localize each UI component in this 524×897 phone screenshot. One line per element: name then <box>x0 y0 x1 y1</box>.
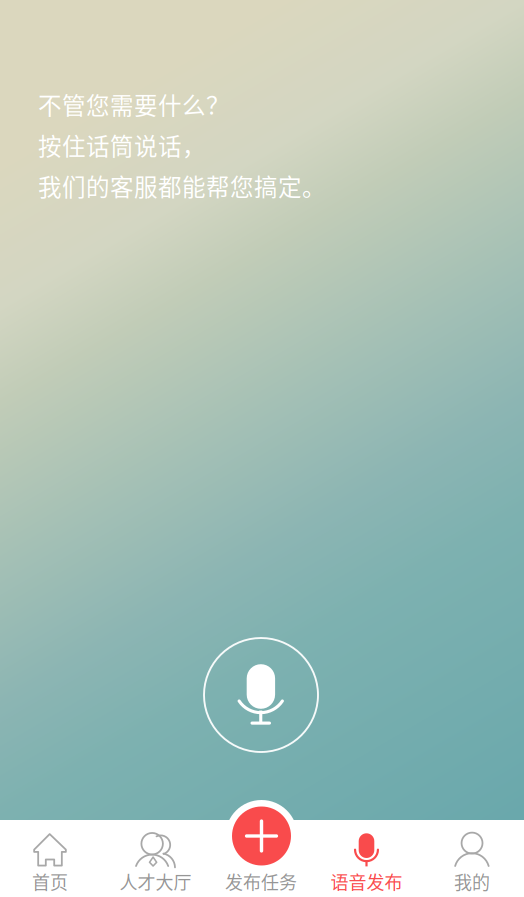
button[interactable]: 按住话筒说话 <box>204 638 318 752</box>
button[interactable]: 我的 <box>419 820 524 897</box>
button[interactable]: 人才大厅 <box>103 820 208 897</box>
button[interactable]: 首页 <box>0 820 103 897</box>
button[interactable]: 发布任务 <box>208 820 314 897</box>
staticText: 人才大厅 <box>119 868 191 895</box>
staticText: 首页 <box>32 868 68 895</box>
staticText: 我的 <box>454 868 490 895</box>
staticText: 按住话筒说话， <box>38 128 206 162</box>
staticText: 发布任务 <box>225 868 297 895</box>
staticText: 语音发布 <box>330 868 402 895</box>
button[interactable]: 发布任务 <box>225 800 297 872</box>
button[interactable]: 语音发布 <box>314 820 419 897</box>
staticText: 不管您需要什么？ <box>38 87 230 121</box>
staticText: 我们的客服都能帮您搞定。 <box>38 169 326 203</box>
